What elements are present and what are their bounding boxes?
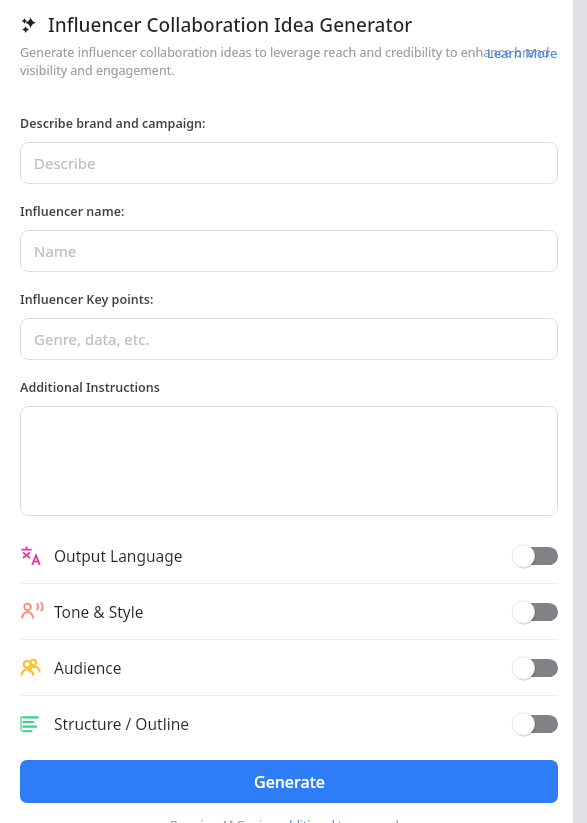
button[interactable]: Name <box>20 230 558 272</box>
button[interactable]: By using AI Genius additional terms appl… <box>170 817 408 823</box>
staticText: Influencer Key points: <box>20 291 154 308</box>
staticText: Generate <box>254 771 325 793</box>
button[interactable]: Genre, data, etc. <box>20 318 558 360</box>
staticText: Structure / Outline <box>54 713 512 734</box>
staticText: Influencer name: <box>20 203 125 220</box>
staticText: Tone & Style <box>54 601 512 622</box>
button[interactable]: Generate <box>20 760 558 803</box>
button[interactable]: Structure / Outline <box>20 696 558 751</box>
button[interactable]: Learn More <box>487 44 558 62</box>
button[interactable]: Describe <box>20 142 558 184</box>
button[interactable] <box>20 406 558 516</box>
staticText: Genre, data, etc. <box>34 329 150 349</box>
staticText: Describe <box>34 153 96 173</box>
staticText: Output Language <box>54 545 512 566</box>
staticText: Generate influencer collaboration ideas … <box>20 44 558 79</box>
staticText: Describe brand and campaign: <box>20 115 206 132</box>
staticText: Additional Instructions <box>20 379 160 396</box>
button[interactable]: Tone & Style <box>20 584 558 639</box>
button[interactable]: Audience <box>20 640 558 695</box>
staticText: Influencer Collaboration Idea Generator <box>48 12 413 38</box>
staticText: Audience <box>54 657 512 678</box>
button[interactable]: Output Language <box>20 528 558 583</box>
staticText: Name <box>34 241 77 261</box>
